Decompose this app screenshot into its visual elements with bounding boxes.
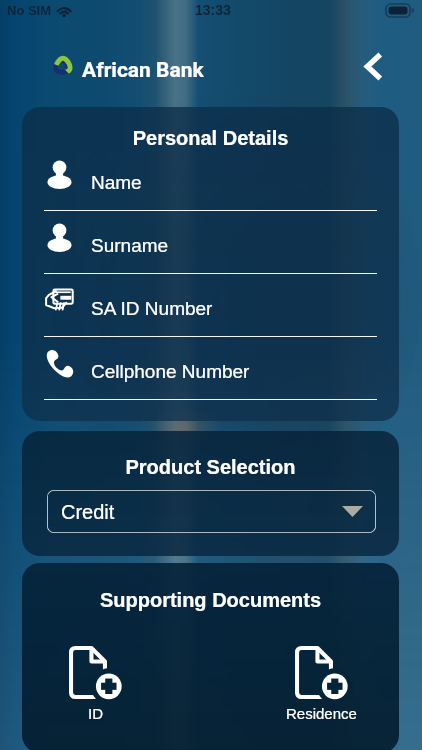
button[interactable]: Back	[355, 48, 391, 84]
button[interactable]: Surname	[22, 218, 399, 281]
staticText: Personal Details	[22, 127, 399, 149]
staticText: No SIM	[7, 3, 52, 18]
button[interactable]: ID	[47, 646, 143, 722]
staticText: Surname	[91, 235, 169, 256]
staticText: SA ID Number	[91, 298, 213, 319]
button[interactable]: SA ID Number	[22, 281, 399, 344]
staticText: Product Selection	[22, 456, 399, 478]
button[interactable]: Cellphone Number	[22, 344, 399, 407]
staticText: African Bank	[82, 58, 204, 83]
button[interactable]: Name	[22, 155, 399, 218]
button[interactable]: Credit	[47, 490, 376, 533]
staticText: 13:33	[195, 2, 231, 18]
staticText: Name	[91, 172, 142, 193]
staticText: Credit	[61, 501, 115, 523]
staticText: Residence	[286, 705, 357, 722]
staticText: ID	[88, 705, 103, 722]
staticText: Cellphone Number	[91, 361, 250, 382]
staticText: Supporting Documents	[22, 589, 399, 611]
button[interactable]: Residence	[273, 646, 369, 722]
